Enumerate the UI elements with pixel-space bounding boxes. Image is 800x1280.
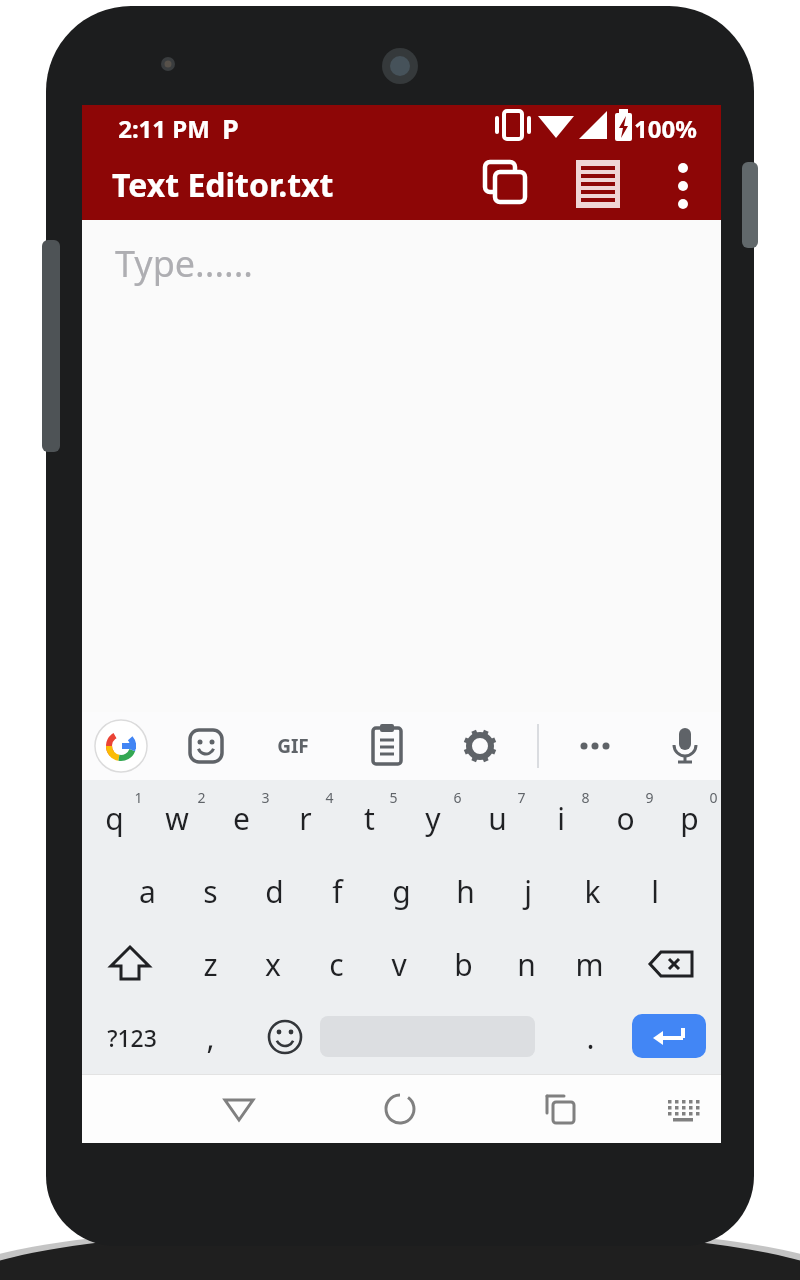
button[interactable] [82,151,721,220]
staticText: 5 [389,788,398,807]
staticText: k [584,871,601,912]
staticText: e [233,798,250,839]
staticText: 9 [645,788,654,807]
button[interactable]: p [661,787,717,849]
staticText: , [206,1017,215,1058]
staticText: q [105,798,124,839]
button[interactable]: , [182,1006,238,1068]
button[interactable]: x [245,933,301,995]
staticText: b [454,944,473,985]
button[interactable]: r [277,787,333,849]
button[interactable]: s [182,860,238,922]
button[interactable]: b [435,933,491,995]
staticText: h [456,871,475,912]
staticText: m [575,944,604,985]
staticText: u [488,798,507,839]
button[interactable]: . [562,1006,618,1068]
staticText: 2:11 PM [118,112,210,145]
button[interactable]: k [564,860,620,922]
staticText: 0 [709,788,718,807]
staticText: 6 [453,788,462,807]
staticText: 7 [517,788,526,807]
button[interactable] [570,158,626,214]
button[interactable] [660,158,706,214]
staticText: 1 [134,788,143,807]
staticText: p [680,798,699,839]
staticText: z [203,944,218,985]
button[interactable] [257,1006,313,1068]
staticText: 2 [197,788,206,807]
staticText: f [332,871,343,912]
button[interactable]: Text Editor.txt [112,155,412,215]
staticText: l [651,871,659,912]
button[interactable]: d [246,860,302,922]
staticText: t [364,798,375,839]
staticText: 4 [325,788,334,807]
button[interactable]: t [341,787,397,849]
staticText: w [165,798,189,839]
button[interactable]: z [182,933,238,995]
button[interactable] [102,933,158,995]
button[interactable] [640,933,702,995]
staticText: 8 [581,788,590,807]
button[interactable]: u [469,787,525,849]
button[interactable]: l [627,860,683,922]
staticText: d [265,871,284,912]
button[interactable] [477,158,533,214]
staticText: n [517,944,536,985]
staticText: y [425,798,441,839]
button[interactable] [535,1084,585,1134]
button[interactable]: a [119,860,175,922]
button[interactable] [375,1084,425,1134]
button[interactable]: g [373,860,429,922]
staticText: x [265,944,281,985]
staticText: a [139,871,156,912]
staticText: 100% [634,112,697,145]
button[interactable]: n [498,933,554,995]
staticText: o [616,798,635,839]
button[interactable]: c [308,933,364,995]
button[interactable]: y [405,787,461,849]
staticText: 3 [261,788,270,807]
button[interactable]: o [597,787,653,849]
button[interactable]: w [149,787,205,849]
staticText: P [222,110,239,147]
staticText: v [391,944,407,985]
button[interactable]: f [309,860,365,922]
staticText: c [329,944,344,985]
staticText: g [392,871,411,912]
button[interactable] [632,1014,706,1058]
staticText: j [524,871,532,912]
staticText: s [203,871,218,912]
button[interactable]: q [86,787,142,849]
button[interactable]: h [437,860,493,922]
staticText: . [586,1017,595,1058]
button[interactable]: ?123 [102,1006,162,1068]
staticText: GIF [277,733,309,759]
button[interactable] [214,1084,264,1134]
staticText: r [299,798,312,839]
staticText: ?123 [107,1022,157,1053]
button[interactable]: j [500,860,556,922]
button[interactable]: GIF [263,726,323,766]
button[interactable]: m [561,933,617,995]
staticText: Text Editor.txt [112,163,334,207]
button[interactable] [658,1084,708,1134]
button[interactable]: v [371,933,427,995]
button[interactable]: i [533,787,589,849]
staticText: Type...... [115,239,253,288]
staticText: i [557,798,565,839]
button[interactable]: e [213,787,269,849]
